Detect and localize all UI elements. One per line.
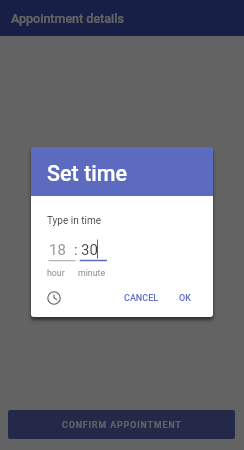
staticText: CANCEL <box>124 293 159 304</box>
staticText: 18 <box>49 241 66 259</box>
staticText: OK <box>179 293 191 304</box>
button[interactable]: OK <box>169 287 201 309</box>
staticText: Set time <box>47 161 127 186</box>
staticText: : <box>74 241 78 259</box>
staticText: Type in time <box>47 215 101 227</box>
button[interactable]: CANCEL <box>116 287 166 309</box>
staticText: minute <box>78 268 106 278</box>
staticText: CONFIRM APPOINTMENT <box>62 420 182 430</box>
staticText: 30 <box>81 241 98 259</box>
staticText: Appointment details <box>11 11 124 26</box>
staticText: hour <box>47 268 65 278</box>
button[interactable]: Switch to clock input <box>41 285 67 311</box>
button[interactable]: CONFIRM APPOINTMENT <box>8 410 235 439</box>
